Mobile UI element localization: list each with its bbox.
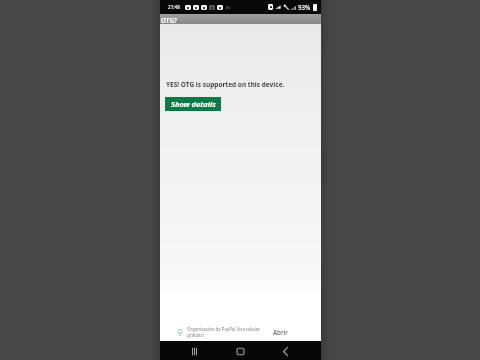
staticText: gratuito — [187, 332, 204, 338]
button[interactable]: Organización de PayPal Visa celular — [160, 280, 321, 341]
staticText: 21:48 — [168, 4, 180, 10]
staticText: Abrir — [273, 328, 288, 336]
button[interactable]: Recents — [187, 344, 201, 358]
staticText: YES! OTG is supported on this device. — [166, 80, 285, 89]
button[interactable]: Show details — [165, 97, 221, 111]
staticText: Show details — [171, 99, 216, 109]
staticText: 93% — [298, 3, 311, 11]
button[interactable]: Home — [233, 344, 247, 358]
staticText: OTG? — [161, 16, 178, 25]
staticText: Organización de PayPal Visa celular — [187, 326, 260, 332]
button[interactable]: Back — [278, 344, 292, 358]
